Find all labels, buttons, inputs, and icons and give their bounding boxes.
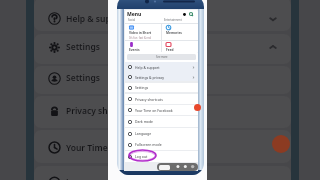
button[interactable]: Privacy shortcuts: [34, 96, 291, 128]
button[interactable]: Memories: [163, 24, 197, 39]
staticText: Settings: [66, 41, 100, 53]
staticText: Your Time on Facebook: [135, 108, 173, 113]
staticText: Settings: [135, 85, 149, 90]
staticText: Social: [128, 18, 136, 22]
button[interactable]: Settings: [125, 83, 198, 92]
staticText: Settings & privacy: [135, 75, 165, 80]
button[interactable]: See more: [127, 54, 196, 60]
staticText: Language: [66, 176, 108, 180]
staticText: Settings: [66, 72, 100, 84]
button[interactable]: Language: [34, 166, 291, 180]
button[interactable]: Settings: [34, 66, 291, 94]
staticText: Fullscreen mode: [135, 142, 162, 147]
button[interactable]: Help & support: [34, 0, 291, 31]
button[interactable]: Create: [194, 104, 201, 111]
staticText: It's fun, fast & real: [129, 36, 152, 39]
staticText: See more: [156, 55, 168, 59]
button[interactable]: Create post: [272, 135, 290, 153]
staticText: Language: [135, 131, 152, 136]
button[interactable]: Your Time on Facebook: [34, 130, 291, 163]
staticText: Video in Short: [129, 31, 152, 35]
staticText: Help & support: [135, 65, 160, 70]
staticText: Privacy shortcuts: [135, 97, 163, 102]
button[interactable]: Help & support: [125, 62, 198, 72]
button[interactable]: Search: [188, 11, 194, 17]
button[interactable]: Fullscreen mode: [125, 139, 198, 150]
button[interactable]: Settings: [34, 34, 291, 64]
button[interactable]: Video in Short: [126, 24, 160, 39]
staticText: Help & support: [66, 13, 129, 25]
button[interactable]: Feed: [163, 41, 197, 52]
staticText: Your Time on Facebook: [66, 142, 163, 154]
staticText: Feed: [166, 48, 174, 52]
button[interactable]: Settings & privacy: [125, 72, 198, 82]
staticText: Entertainment: [164, 18, 182, 22]
staticText: Memories: [166, 31, 182, 35]
button[interactable]: Log out: [125, 151, 198, 162]
button[interactable]: Privacy shortcuts: [125, 94, 198, 104]
staticText: Dark mode: [135, 119, 153, 124]
staticText: Privacy shortcuts: [66, 105, 138, 117]
button[interactable]: Events: [126, 41, 160, 52]
staticText: Events: [129, 48, 140, 52]
staticText: Log out: [135, 154, 148, 159]
button[interactable]: Settings: [181, 11, 187, 17]
button[interactable]: Your Time on Facebook: [125, 105, 198, 115]
button[interactable]: Dark mode: [125, 116, 198, 127]
staticText: Menu: [127, 11, 142, 18]
button[interactable]: Language: [125, 128, 198, 139]
